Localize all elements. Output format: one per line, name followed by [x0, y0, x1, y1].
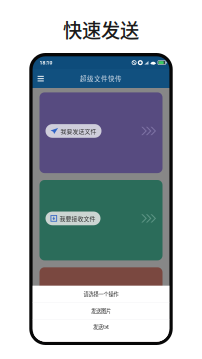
button[interactable]: 发送txt — [33, 319, 169, 334]
button[interactable]: 请选择一个操作 — [33, 286, 169, 302]
staticText: 超级文件快传 — [80, 74, 122, 83]
staticText: 请选择一个操作 — [83, 290, 118, 298]
button[interactable] — [39, 267, 162, 348]
button[interactable]: 我要接收文件 — [39, 180, 162, 260]
staticText: 快速发送 — [63, 16, 139, 43]
staticText: 发送txt — [93, 323, 109, 330]
staticText: 发送图片 — [91, 307, 111, 315]
button[interactable]: 发送图片 — [33, 303, 169, 319]
button[interactable]: 我要发送文件 — [39, 92, 162, 173]
button[interactable]: Menu — [35, 73, 47, 84]
staticText: 我要发送文件 — [60, 127, 96, 135]
staticText: 我要接收文件 — [59, 214, 95, 223]
staticText: 18:10 — [40, 59, 53, 66]
